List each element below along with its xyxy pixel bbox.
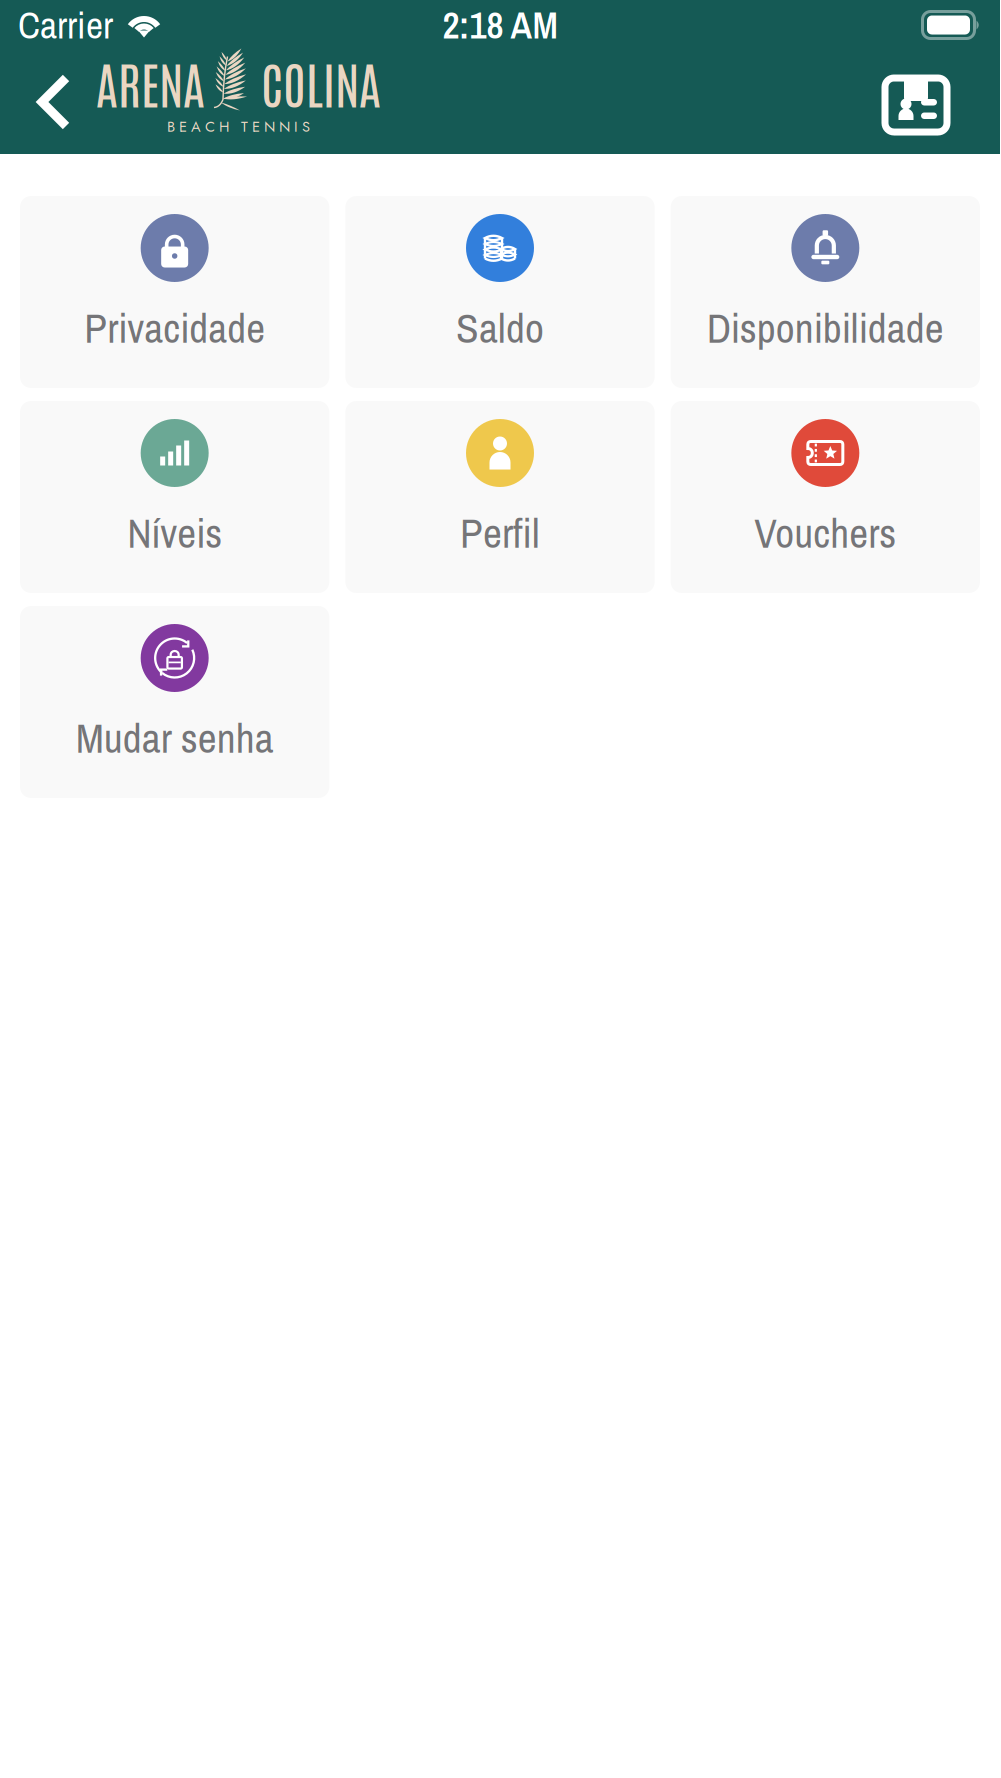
- button[interactable]: Back: [0, 50, 108, 154]
- staticText: Privacidade: [84, 300, 265, 356]
- button[interactable]: Vouchers: [671, 401, 980, 593]
- staticText: Saldo: [456, 300, 544, 356]
- staticText: 2:18 AM: [442, 0, 557, 50]
- staticText: Mudar senha: [76, 710, 274, 766]
- button[interactable]: Perfil: [345, 401, 655, 593]
- staticText: ARENA: [96, 51, 205, 114]
- button[interactable]: Mudar senha: [20, 606, 329, 798]
- staticText: Níveis: [127, 505, 222, 561]
- staticText: B E A C H T E N N I S: [167, 116, 310, 137]
- staticText: Carrier: [18, 0, 113, 50]
- staticText: Disponibilidade: [707, 300, 944, 356]
- button[interactable]: Saldo: [345, 196, 655, 388]
- button[interactable]: Disponibilidade: [671, 196, 980, 388]
- button[interactable]: Privacidade: [20, 196, 329, 388]
- staticText: Vouchers: [754, 505, 896, 561]
- staticText: Perfil: [460, 505, 540, 561]
- button[interactable]: Níveis: [20, 401, 329, 593]
- staticText: COLINA: [261, 51, 381, 114]
- button[interactable]: Member card: [866, 50, 966, 154]
